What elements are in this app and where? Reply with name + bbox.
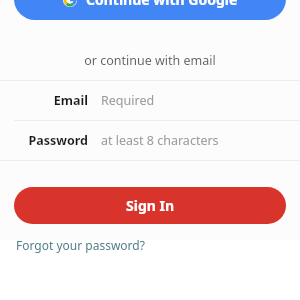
staticText: Password: [28, 132, 88, 149]
other: Google: [63, 0, 77, 7]
button[interactable]: Password: [0, 121, 300, 160]
button[interactable]: Sign In: [14, 187, 286, 224]
staticText: Continue with Google: [86, 0, 238, 9]
button[interactable]: Email: [0, 81, 300, 120]
staticText: or continue with email: [84, 52, 216, 69]
staticText: Required: [101, 92, 155, 109]
staticText: Email: [53, 92, 88, 109]
staticText: at least 8 characters: [101, 132, 219, 149]
button[interactable]: Google: [14, 0, 286, 20]
button[interactable]: Forgot your password?: [16, 237, 145, 253]
staticText: Forgot your password?: [16, 237, 145, 253]
staticText: Sign In: [126, 196, 175, 215]
